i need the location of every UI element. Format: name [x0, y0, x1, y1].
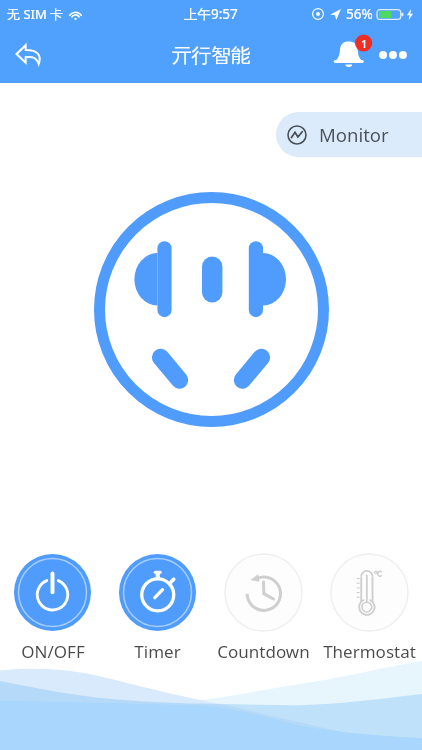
staticText: 1 — [361, 36, 368, 51]
button[interactable]: Thermostat — [316, 553, 422, 663]
button[interactable]: Notifications — [329, 33, 373, 77]
staticText: Countdown — [217, 640, 310, 663]
button[interactable]: Timer — [105, 553, 210, 663]
button[interactable]: Monitor — [276, 112, 422, 157]
staticText: 上午9:57 — [184, 5, 238, 23]
staticText: Timer — [134, 640, 181, 663]
button[interactable]: ON/OFF — [0, 553, 105, 663]
button[interactable]: Countdown — [210, 553, 316, 663]
staticText: 56% — [346, 5, 373, 23]
button[interactable]: Back — [6, 31, 54, 79]
staticText: 亓行智能 — [172, 43, 251, 68]
button[interactable]: More options — [377, 39, 409, 71]
staticText: ON/OFF — [21, 640, 85, 663]
staticText: Monitor — [319, 122, 389, 147]
staticText: Thermostat — [323, 640, 416, 663]
staticText: 无 SIM 卡 — [7, 5, 64, 23]
